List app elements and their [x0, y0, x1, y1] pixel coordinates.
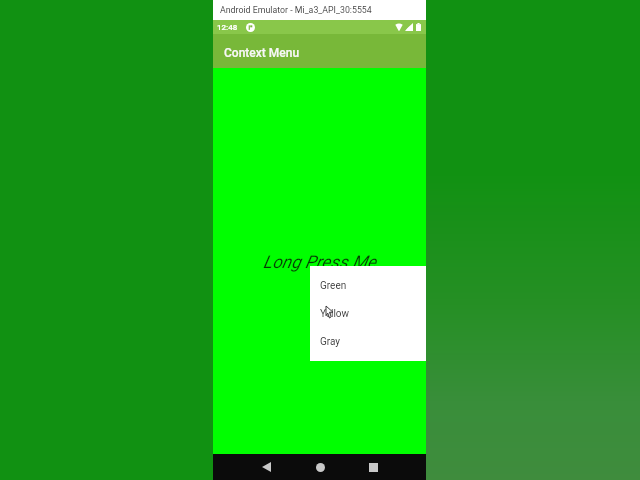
- button[interactable]: Gray: [310, 328, 426, 356]
- button[interactable]: Back: [253, 454, 279, 480]
- button[interactable]: Green: [310, 272, 426, 300]
- button[interactable]: Recents: [360, 454, 386, 480]
- staticText: Context Menu: [224, 46, 300, 60]
- button[interactable]: Long Press Me: [263, 252, 376, 273]
- staticText: 12:48: [217, 23, 238, 32]
- staticText: Android Emulator - Mi_a3_API_30:5554: [220, 5, 372, 15]
- button[interactable]: Yellow: [310, 300, 426, 328]
- staticText: Green: [320, 280, 347, 292]
- staticText: Gray: [320, 336, 341, 348]
- button[interactable]: Home: [307, 454, 333, 480]
- staticText: Yellow: [320, 308, 350, 320]
